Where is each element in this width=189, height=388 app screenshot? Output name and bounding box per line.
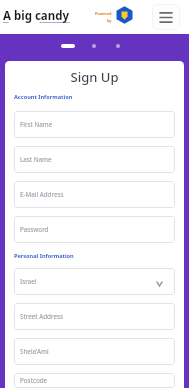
button[interactable]: Page 2 [92, 44, 96, 48]
button[interactable]: Page 1 [61, 44, 75, 48]
button[interactable]: Page 3 [116, 44, 120, 48]
staticText: Street Address [20, 312, 64, 321]
staticText: Shela'Ami [20, 347, 49, 356]
button[interactable]: Password [14, 216, 175, 243]
button[interactable]: Israel [14, 268, 175, 295]
button[interactable]: E-Mail Address [14, 181, 175, 208]
staticText: Password [20, 225, 49, 234]
staticText: Account Information [14, 93, 73, 101]
button[interactable]: First Name [14, 111, 175, 138]
button[interactable]: Street Address [14, 303, 175, 330]
staticText: Last Name [20, 155, 52, 164]
staticText: Powered [95, 11, 112, 16]
staticText: Personal Information [14, 252, 74, 260]
staticText: Postcode [20, 376, 48, 385]
staticText: Sign Up [14, 68, 175, 86]
staticText: E-Mail Address [20, 190, 64, 199]
button[interactable]: Postcode [14, 373, 175, 388]
staticText: A big candy [3, 8, 70, 24]
staticText: by [107, 18, 112, 23]
button[interactable]: Last Name [14, 146, 175, 173]
button[interactable]: Menu [152, 4, 180, 30]
staticText: Israel [20, 277, 37, 286]
button[interactable]: Shela'Ami [14, 338, 175, 365]
staticText: First Name [20, 120, 53, 129]
